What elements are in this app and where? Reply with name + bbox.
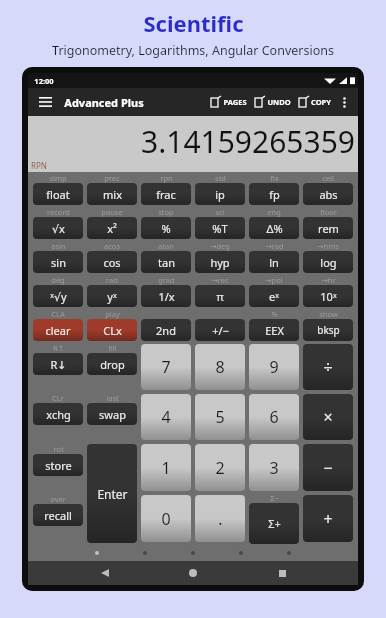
button[interactable]: 1/x <box>141 285 191 307</box>
button[interactable]: abs <box>303 183 353 205</box>
staticText: Trigonometry, Logarithms, Angular Conver… <box>0 42 386 59</box>
staticText: eng <box>267 207 281 217</box>
button[interactable]: Back <box>93 561 117 585</box>
staticText: frac <box>156 187 176 202</box>
button[interactable]: fp <box>249 183 299 205</box>
button[interactable]: tan <box>141 251 191 273</box>
staticText: record <box>47 207 70 217</box>
button[interactable]: 2 <box>195 444 245 491</box>
staticText: +/− <box>212 323 229 338</box>
button[interactable]: x² <box>87 217 137 239</box>
button[interactable]: EEX <box>249 319 299 341</box>
button[interactable]: 10ˣ <box>303 285 353 307</box>
button[interactable]: Menu <box>34 91 56 113</box>
staticText: × <box>323 406 333 428</box>
button[interactable]: swap <box>87 403 137 425</box>
staticText: float <box>46 187 70 202</box>
staticText: 10ˣ <box>320 289 337 304</box>
button[interactable]: − <box>303 444 353 491</box>
button[interactable]: 0 <box>141 495 191 542</box>
button[interactable]: Σ+ <box>249 503 299 544</box>
button[interactable]: R↓ <box>33 353 83 375</box>
button[interactable]: log <box>303 251 353 273</box>
button[interactable]: eˣ <box>249 285 299 307</box>
button[interactable]: store <box>33 454 83 476</box>
button[interactable]: COPY <box>298 96 332 108</box>
button[interactable]: yˣ <box>87 285 137 307</box>
button[interactable]: cos <box>87 251 137 273</box>
button[interactable]: UNDO <box>254 96 292 108</box>
button[interactable]: 1 <box>141 444 191 491</box>
button[interactable]: √x <box>33 217 83 239</box>
staticText: sci <box>215 207 225 217</box>
button[interactable]: % <box>141 217 191 239</box>
button[interactable]: × <box>303 394 353 440</box>
button[interactable]: . <box>195 495 245 542</box>
button[interactable]: +/− <box>195 319 245 341</box>
button[interactable]: clear <box>33 319 83 341</box>
staticText: rad <box>106 275 118 285</box>
button[interactable]: 8 <box>195 344 245 390</box>
button[interactable]: ip <box>195 183 245 205</box>
button[interactable]: 7 <box>141 344 191 390</box>
button[interactable]: 4 <box>141 394 191 440</box>
button[interactable]: Home <box>181 561 205 585</box>
staticText: 12:00 <box>34 76 54 86</box>
button[interactable]: Δ% <box>249 217 299 239</box>
staticText: ÷ <box>323 356 333 378</box>
staticText: CLr <box>52 393 64 403</box>
staticText: std <box>215 173 226 183</box>
staticText: ln <box>269 255 279 270</box>
button[interactable]: recall <box>33 504 83 526</box>
button[interactable]: ln <box>249 251 299 273</box>
button[interactable]: 6 <box>249 394 299 440</box>
button[interactable]: π <box>195 285 245 307</box>
staticText: π <box>216 289 224 304</box>
button[interactable]: PAGES <box>210 96 248 108</box>
staticText: →pol <box>265 275 283 285</box>
staticText: →rec <box>211 275 229 285</box>
button[interactable]: CLx <box>87 319 137 341</box>
button[interactable]: ÷ <box>303 344 353 390</box>
button[interactable]: 2nd <box>141 319 191 341</box>
staticText: 4 <box>161 406 171 428</box>
staticText: hyp <box>210 255 230 270</box>
staticText: xchg <box>46 407 71 422</box>
button[interactable]: float <box>33 183 83 205</box>
staticText: atan <box>158 241 174 251</box>
staticText: Scientific <box>143 8 244 38</box>
staticText: PAGES <box>223 97 247 107</box>
staticText: RPN <box>31 160 47 171</box>
staticText: 2 <box>215 457 225 479</box>
staticText: recall <box>44 508 72 523</box>
staticText: swap <box>99 407 126 422</box>
staticText: % <box>161 221 171 236</box>
button[interactable]: Recents <box>270 561 294 585</box>
staticText: rot <box>53 444 64 454</box>
button[interactable]: More options <box>336 94 352 110</box>
button[interactable]: xchg <box>33 403 83 425</box>
button[interactable]: Enter <box>87 444 137 543</box>
staticText: →hr <box>321 275 336 285</box>
button[interactable]: frac <box>141 183 191 205</box>
button[interactable]: drop <box>87 353 137 375</box>
button[interactable]: 5 <box>195 394 245 440</box>
staticText: %T <box>212 221 228 236</box>
staticText: √x <box>52 221 65 236</box>
staticText: log <box>320 255 337 270</box>
button[interactable]: 9 <box>249 344 299 390</box>
button[interactable]: ˣ√y <box>33 285 83 307</box>
staticText: fp <box>269 187 280 202</box>
staticText: R↓ <box>50 357 67 372</box>
button[interactable]: hyp <box>195 251 245 273</box>
staticText: 0 <box>161 508 171 530</box>
button[interactable]: %T <box>195 217 245 239</box>
staticText: eˣ <box>269 289 279 304</box>
button[interactable]: 3 <box>249 444 299 491</box>
button[interactable]: mix <box>87 183 137 205</box>
button[interactable]: bksp <box>303 319 353 341</box>
staticText: ceil <box>322 173 334 183</box>
button[interactable]: rem <box>303 217 353 239</box>
button[interactable]: + <box>303 495 353 542</box>
button[interactable]: sin <box>33 251 83 273</box>
